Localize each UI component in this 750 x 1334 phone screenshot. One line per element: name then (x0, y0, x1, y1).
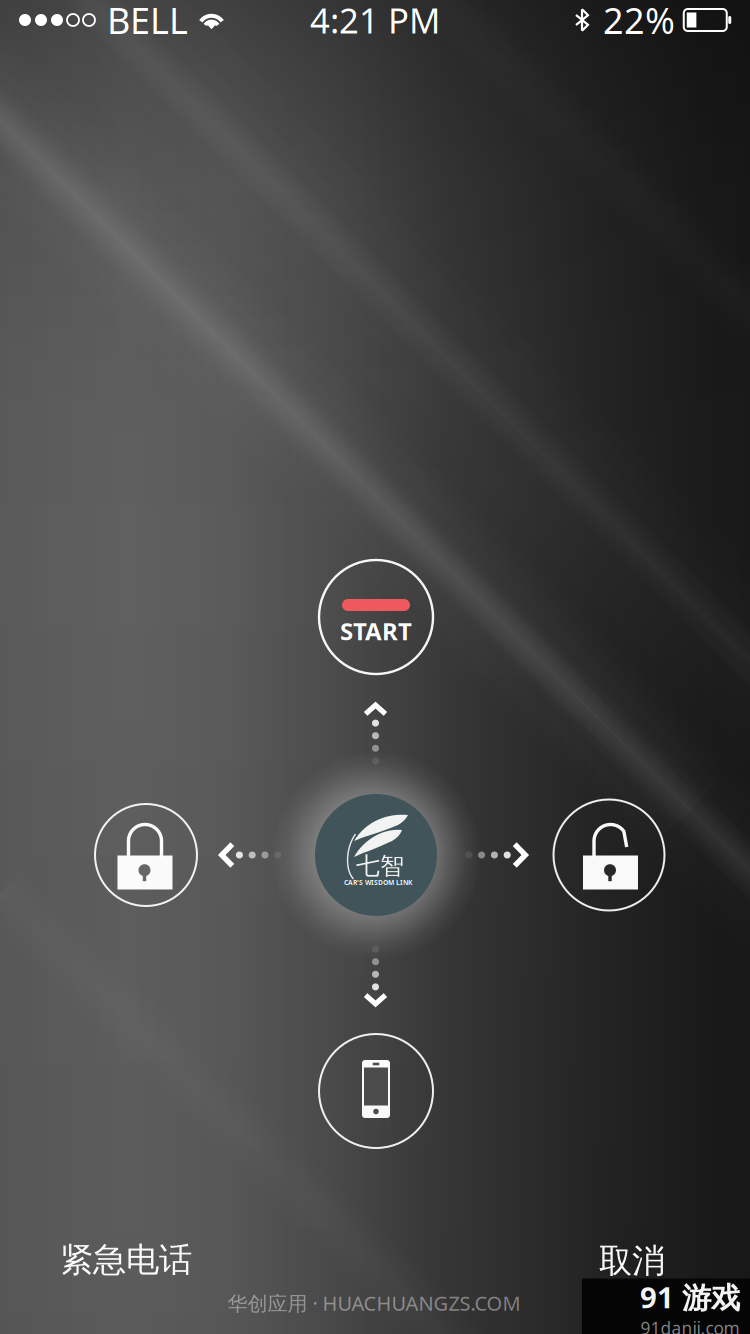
button[interactable]: Unlock (552, 798, 665, 911)
staticText: 91danji.com (640, 1316, 739, 1334)
staticText: 华创应用 · HUACHUANGZS.COM (227, 1290, 520, 1316)
staticText: 七智 (356, 851, 404, 881)
staticText: START (340, 615, 412, 647)
staticText: 4:21 PM (310, 0, 440, 43)
button[interactable]: Find my car (318, 1033, 434, 1149)
staticText: 91 游戏 (640, 1277, 740, 1316)
button[interactable]: 紧急电话 (44, 1227, 208, 1292)
staticText: CAR'S WISDOM LINK (344, 878, 412, 887)
staticText: 取消 (599, 1240, 665, 1281)
button[interactable]: START (318, 559, 434, 675)
button[interactable]: Lock (94, 803, 198, 907)
staticText: 22% (603, 0, 675, 44)
button[interactable]: 取消 (583, 1228, 681, 1293)
staticText: BELL (107, 0, 188, 44)
staticText: 紧急电话 (60, 1239, 192, 1280)
